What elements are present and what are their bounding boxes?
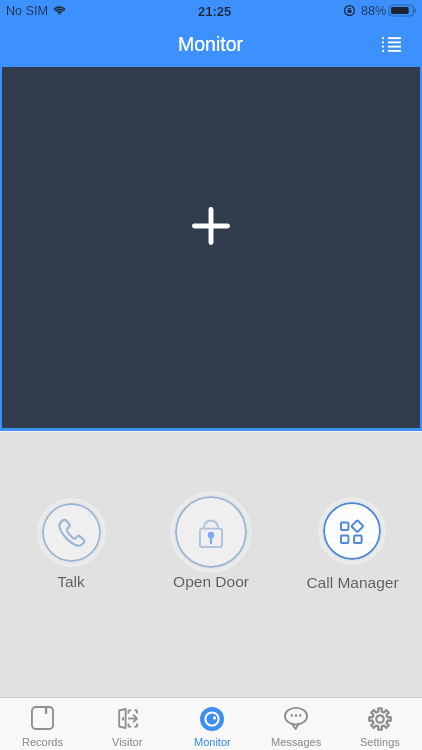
staticText: Monitor <box>178 33 244 55</box>
staticText: Call Manager <box>306 574 399 591</box>
button[interactable]: Records <box>0 698 85 750</box>
staticText: Settings <box>360 736 400 748</box>
button[interactable] <box>149 492 273 572</box>
button[interactable] <box>9 499 133 566</box>
button[interactable]: Settings <box>338 698 422 750</box>
staticText: Messages <box>271 736 322 748</box>
staticText: Talk <box>57 573 85 590</box>
button[interactable]: Add camera <box>2 67 420 428</box>
button[interactable] <box>290 498 414 564</box>
button[interactable]: Visitor <box>85 698 170 750</box>
staticText: No SIM <box>6 4 48 18</box>
staticText: Monitor <box>194 736 231 748</box>
staticText: 21:25 <box>198 4 232 19</box>
button[interactable]: Menu list <box>370 26 412 62</box>
button[interactable]: Monitor <box>170 698 254 750</box>
staticText: Records <box>22 736 63 748</box>
button[interactable]: Messages <box>254 698 338 750</box>
staticText: Visitor <box>112 736 143 748</box>
staticText: 88% <box>361 4 387 18</box>
staticText: Open Door <box>173 573 249 590</box>
